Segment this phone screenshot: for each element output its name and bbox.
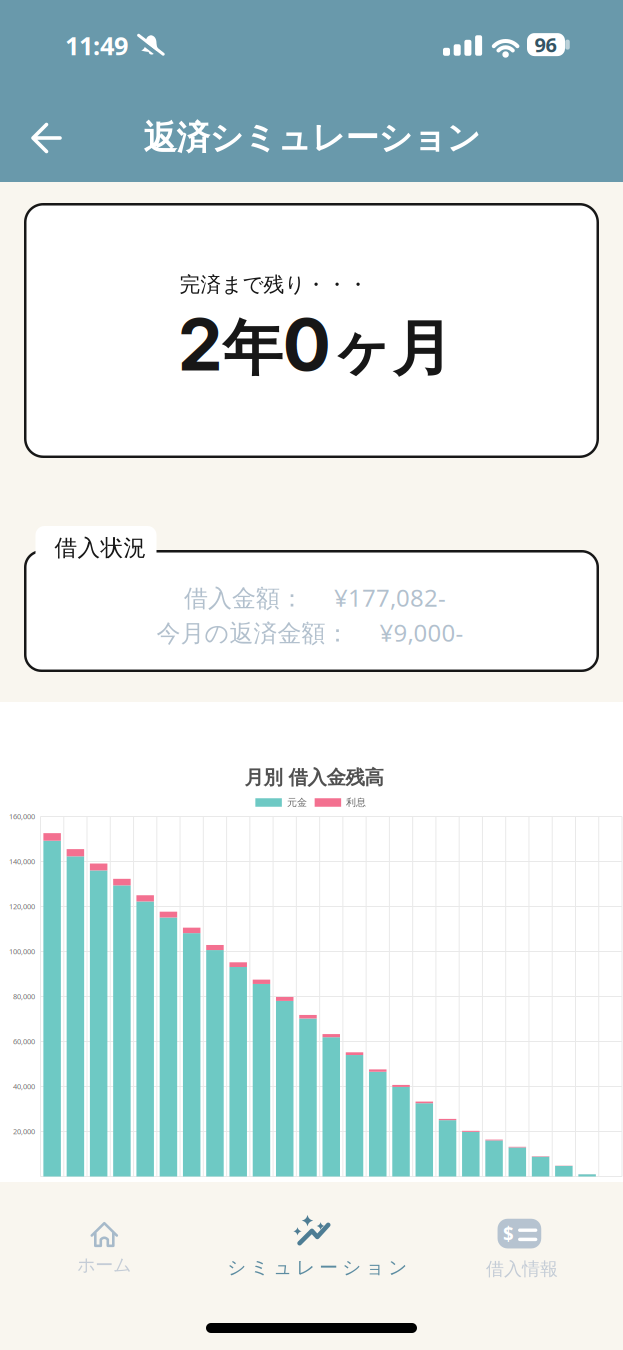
staticText: $ — [503, 1221, 514, 1246]
staticText: 利息 — [346, 796, 366, 809]
staticText: 2年0ヶ月 — [177, 302, 452, 387]
button[interactable]: $ — [415, 1193, 623, 1350]
staticText: 60,000 — [13, 1036, 35, 1046]
staticText: シ ミ ュ レ ー シ ョ ン — [227, 1256, 407, 1279]
staticText: 140,000 — [9, 856, 35, 866]
staticText: 11:49 — [65, 28, 128, 62]
button[interactable]: ホーム — [0, 1193, 208, 1350]
staticText: 96 — [534, 31, 556, 58]
button[interactable]: シ ミ ュ レ ー シ ョ ン — [208, 1193, 415, 1350]
staticText: 完済まで残り・・・ — [179, 271, 368, 297]
staticText: 20,000 — [13, 1126, 35, 1136]
staticText: 120,000 — [9, 901, 35, 911]
staticText: 借入状況 — [54, 534, 146, 562]
staticText: 元金 — [287, 796, 307, 809]
staticText: ホーム — [77, 1254, 131, 1276]
staticText: 40,000 — [13, 1081, 35, 1091]
staticText: 100,000 — [9, 946, 35, 956]
staticText: 借入金額： ¥177,082- — [184, 581, 446, 614]
staticText: 返済シミュレーション — [143, 117, 480, 159]
staticText: 借入情報 — [486, 1258, 558, 1280]
button[interactable]: Back — [22, 114, 70, 162]
staticText: 160,000 — [9, 811, 35, 821]
staticText: 80,000 — [13, 991, 35, 1001]
staticText: 月別 借入金残高 — [244, 765, 383, 790]
staticText: 今月の返済金額： ¥9,000- — [156, 616, 463, 649]
